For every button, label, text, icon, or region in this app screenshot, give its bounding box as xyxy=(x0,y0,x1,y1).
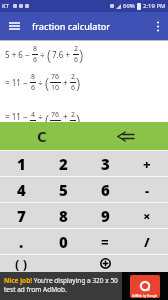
button[interactable]: 1 xyxy=(0,151,42,176)
staticText: 8 xyxy=(33,44,38,54)
staticText: 2 xyxy=(71,72,76,82)
staticText: 0 xyxy=(59,232,68,252)
button[interactable]: 0 xyxy=(42,229,84,254)
staticText: 2:19 PM xyxy=(143,2,166,10)
staticText: - xyxy=(145,181,150,199)
staticText: ( ) xyxy=(15,255,28,272)
staticText: 6 xyxy=(31,83,36,93)
button[interactable]: 6 xyxy=(84,177,126,202)
button[interactable]: = xyxy=(84,229,126,254)
staticText: KT xyxy=(2,2,10,10)
button[interactable]: . xyxy=(0,229,42,254)
staticText: ) xyxy=(76,110,81,122)
button[interactable]: Nice job! You're displaying a 320 x 50 xyxy=(0,272,168,300)
button[interactable]: 3 xyxy=(84,151,126,176)
staticText: 10 xyxy=(51,83,60,93)
button[interactable]: - xyxy=(126,177,168,202)
staticText: + xyxy=(61,111,70,122)
staticText: 69% xyxy=(123,2,135,10)
staticText: 4 xyxy=(17,180,26,200)
button[interactable] xyxy=(84,255,126,272)
button[interactable]: 7 xyxy=(0,203,42,228)
staticText: ( xyxy=(47,45,52,65)
staticText: C xyxy=(37,126,47,146)
button[interactable]: 2 xyxy=(42,151,84,176)
staticText: 7 xyxy=(17,206,26,226)
button[interactable]: 9 xyxy=(84,203,126,228)
staticText: fraction calculator xyxy=(32,20,111,32)
staticText: + xyxy=(143,155,151,173)
staticText: ÷ xyxy=(38,49,47,60)
staticText: 2 xyxy=(59,154,68,174)
staticText: 7.6 + xyxy=(52,49,73,60)
staticText: × xyxy=(143,207,151,225)
button[interactable]: 4 xyxy=(0,177,42,202)
staticText: test ad from AdMob. xyxy=(4,285,67,294)
staticText: AdMob by Google xyxy=(132,294,158,298)
staticText: 2 xyxy=(74,44,79,54)
staticText: 4 xyxy=(31,110,36,120)
button[interactable]: × xyxy=(126,203,168,228)
staticText: ( xyxy=(45,73,50,93)
button[interactable] xyxy=(148,12,168,40)
button[interactable]: 5 xyxy=(42,177,84,202)
staticText: 8 xyxy=(59,206,68,226)
staticText: 6 xyxy=(71,83,76,93)
staticText: Nice job! You're displaying a 320 x 50 xyxy=(4,276,118,285)
staticText: 6 xyxy=(74,55,79,65)
staticText: 2 xyxy=(71,110,76,120)
staticText: 5 xyxy=(59,180,68,200)
button[interactable]: / xyxy=(126,229,168,254)
staticText: 6 xyxy=(101,180,110,200)
staticText: ÷ xyxy=(36,111,45,122)
staticText: 3 xyxy=(101,154,110,174)
staticText: 76 xyxy=(51,110,60,120)
staticText: 5 + 6 − xyxy=(5,49,32,60)
staticText: 1 xyxy=(17,154,26,174)
staticText: ÷ xyxy=(36,77,45,88)
staticText: = 11 − xyxy=(5,111,30,122)
button[interactable]: 8 xyxy=(42,203,84,228)
staticText: / xyxy=(144,233,150,251)
staticText: 8 xyxy=(31,72,36,82)
staticText: ( xyxy=(45,110,50,122)
staticText: ) xyxy=(79,45,84,65)
staticText: . xyxy=(19,232,24,252)
button[interactable] xyxy=(84,122,168,150)
staticText: ) xyxy=(76,73,81,93)
staticText: 9 xyxy=(101,206,110,226)
staticText: + xyxy=(61,77,70,88)
staticText: 6 xyxy=(33,55,38,65)
staticText: = 11 − xyxy=(5,77,30,88)
button[interactable]: + xyxy=(126,151,168,176)
button[interactable] xyxy=(0,12,28,40)
button[interactable]: ( ) xyxy=(0,255,42,272)
staticText: 76 xyxy=(51,72,60,82)
staticText: = xyxy=(101,233,109,251)
button[interactable]: C xyxy=(0,122,84,150)
